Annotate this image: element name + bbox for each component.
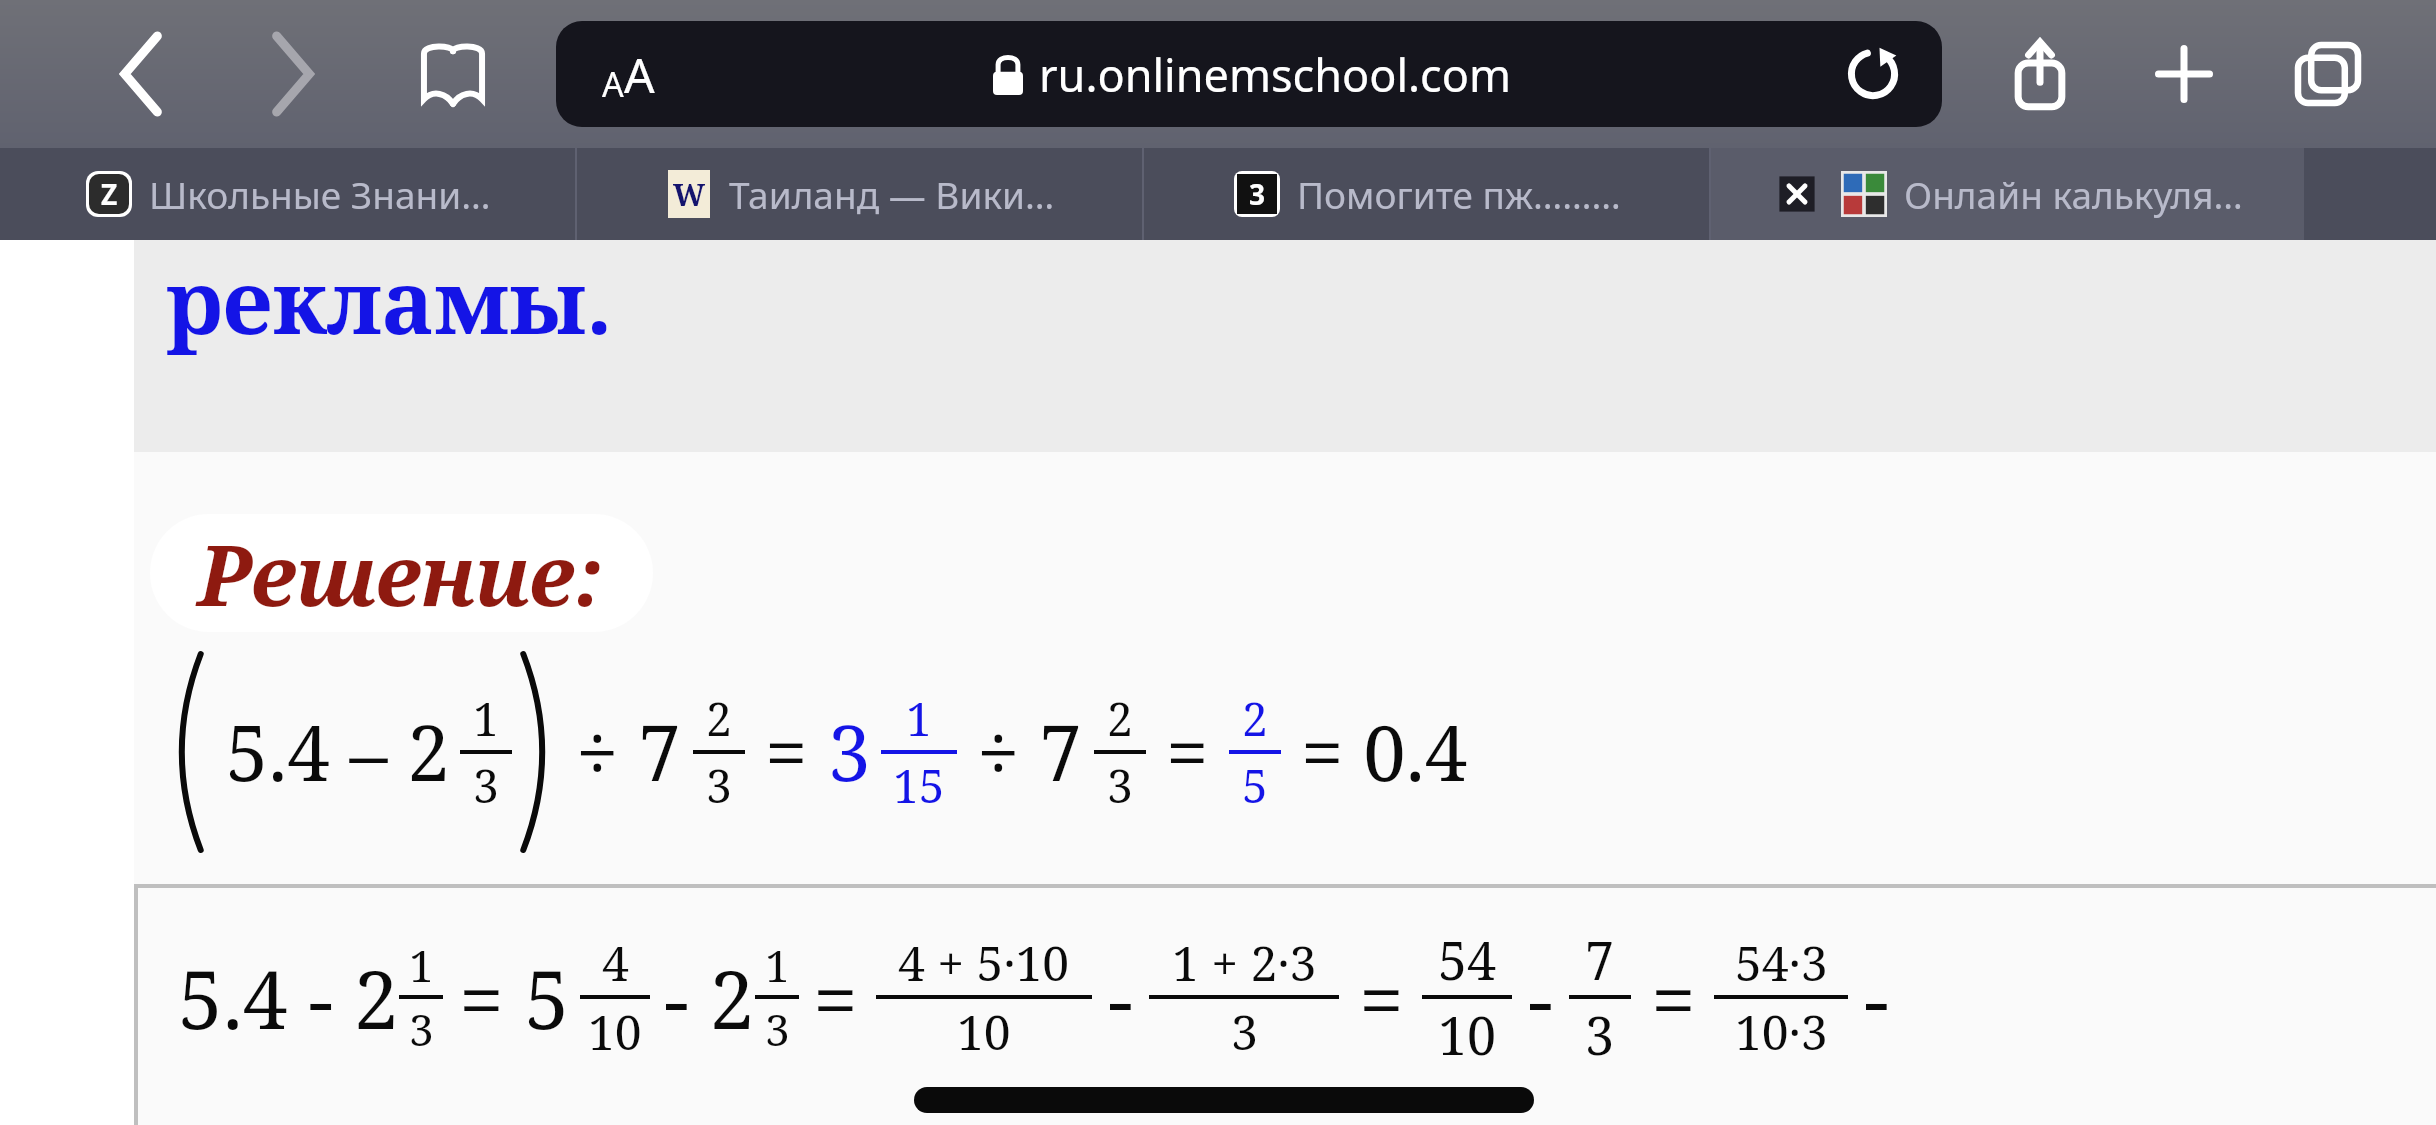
button[interactable]: Share <box>1988 18 2092 130</box>
staticText: A <box>602 61 624 107</box>
staticText: ÷ 7 <box>576 700 681 804</box>
staticText: 3 <box>409 999 434 1059</box>
staticText: 10·3 <box>1735 999 1828 1064</box>
staticText: ÷ 7 <box>977 700 1082 804</box>
staticText: = <box>813 943 858 1052</box>
staticText: 4 <box>602 930 629 995</box>
staticText: Школьные Знани… <box>149 169 491 219</box>
button[interactable]: Reload <box>1830 31 1916 117</box>
staticText: 3 <box>828 700 871 804</box>
staticText: = <box>1359 943 1404 1052</box>
staticText: 1 <box>409 935 434 995</box>
staticText: Таиланд — Вики… <box>729 169 1055 219</box>
staticText: 2 <box>706 687 732 750</box>
button[interactable]: New Tab <box>2132 18 2236 130</box>
staticText: Z <box>101 175 118 213</box>
staticText: - 2 <box>664 943 755 1052</box>
button[interactable]: Show Tabs <box>2276 18 2380 130</box>
staticText: A <box>624 42 655 107</box>
staticText: 1 <box>473 687 499 750</box>
staticText: 2 <box>1242 687 1268 750</box>
staticText: W <box>673 174 706 215</box>
staticText: 5.4 - 2 <box>178 943 399 1052</box>
staticText: 3 <box>1107 754 1133 817</box>
staticText: - <box>1528 943 1553 1052</box>
staticText: 5.4 – 2 <box>206 700 450 804</box>
staticText: ru.onlinemschool.com <box>1039 44 1511 105</box>
staticText: 3 <box>1231 999 1258 1064</box>
button[interactable]: 3 <box>1144 148 1709 240</box>
staticText: 54 <box>1438 924 1497 995</box>
button[interactable]: Close tab <box>1711 148 2304 240</box>
button[interactable]: Text size <box>556 21 1942 127</box>
staticText: Решение: <box>198 516 605 630</box>
staticText: = <box>1166 700 1229 804</box>
button[interactable]: Bookmarks <box>394 18 512 130</box>
staticText: 2 <box>1107 687 1133 750</box>
staticText: = 0.4 <box>1301 700 1468 804</box>
staticText: = <box>1651 943 1696 1052</box>
staticText: = <box>765 700 828 804</box>
staticText: Онлайн калькуля… <box>1904 169 2243 219</box>
staticText: 3 <box>1585 999 1615 1070</box>
staticText: 3 <box>1249 175 1266 213</box>
staticText: 3 <box>765 999 790 1059</box>
staticText: 15 <box>893 754 945 817</box>
button[interactable]: Text size <box>582 33 674 115</box>
staticText: 10 <box>588 999 642 1064</box>
staticText: 10 <box>1438 999 1497 1070</box>
staticText: 7 <box>1585 924 1615 995</box>
staticText: рекламы. <box>166 240 613 360</box>
staticText: 4 + 5·10 <box>898 930 1070 995</box>
staticText: 5 <box>1242 754 1268 817</box>
staticText: - <box>1108 943 1133 1052</box>
button[interactable]: W <box>577 148 1142 240</box>
staticText: 3 <box>706 754 732 817</box>
staticText: 10 <box>957 999 1011 1064</box>
button[interactable]: Back <box>90 18 194 130</box>
staticText: 3 <box>473 754 499 817</box>
staticText: 1 <box>765 935 790 995</box>
staticText: - <box>1864 943 1889 1052</box>
staticText: 54·3 <box>1735 930 1828 995</box>
staticText: 1 <box>906 687 932 750</box>
staticText: = 5 <box>459 943 570 1052</box>
staticText: Помогите пж……… <box>1297 169 1621 219</box>
staticText: 1 + 2·3 <box>1172 930 1317 995</box>
button[interactable]: Z <box>0 148 575 240</box>
button[interactable]: Forward <box>240 18 344 130</box>
button[interactable]: Close tab <box>1772 169 1822 219</box>
